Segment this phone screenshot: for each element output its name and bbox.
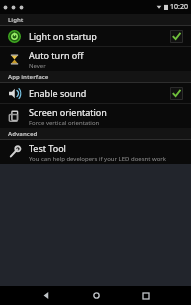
- other: Test Tool: [8, 146, 21, 159]
- staticText: You can help developers if your LED does…: [29, 155, 167, 163]
- staticText: Never: [29, 62, 46, 70]
- button[interactable]: Toggle: [170, 30, 183, 43]
- staticText: 10:20: [170, 2, 188, 12]
- button[interactable]: Enable sound: [0, 83, 191, 103]
- button[interactable]: Back: [21, 286, 71, 305]
- button[interactable]: Test Tool: [0, 140, 191, 164]
- staticText: Enable sound: [29, 87, 87, 99]
- staticText: Light on startup: [29, 30, 97, 42]
- other: Enable sound: [8, 87, 21, 100]
- button[interactable]: Toggle: [170, 87, 183, 100]
- other: Auto turn off: [8, 53, 21, 66]
- button[interactable]: Auto turn off: [0, 47, 191, 71]
- button[interactable]: Screen orientation: [0, 104, 191, 128]
- staticText: Auto turn off: [29, 49, 84, 61]
- staticText: App interface: [8, 73, 49, 81]
- staticText: Force vertical orientation: [29, 119, 100, 127]
- other: Light on startup: [8, 30, 21, 43]
- other: Screen orientation: [8, 110, 21, 123]
- button[interactable]: Light on startup: [0, 26, 191, 46]
- staticText: Test Tool: [29, 142, 66, 154]
- button[interactable]: Recents: [121, 286, 171, 305]
- staticText: Advanced: [8, 130, 38, 138]
- staticText: Light: [8, 16, 24, 24]
- button[interactable]: Home: [71, 286, 121, 305]
- staticText: Screen orientation: [29, 106, 107, 118]
